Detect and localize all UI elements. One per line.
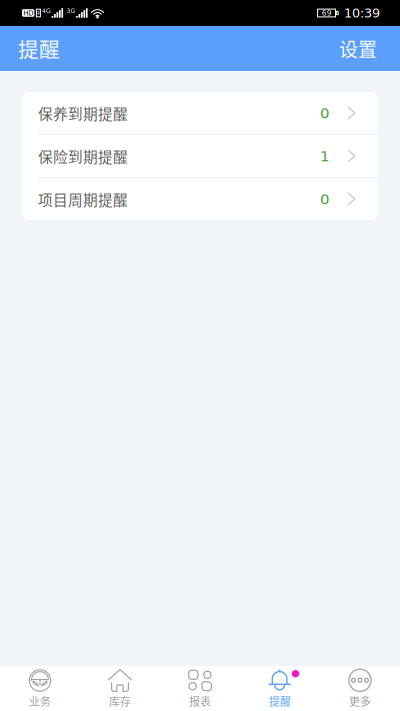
staticText: 1 (320, 147, 330, 165)
button[interactable]: 更多 (320, 666, 400, 711)
staticText: 4G (42, 7, 51, 14)
staticText: 10:39 (344, 6, 380, 20)
button[interactable]: 设置 (319, 25, 377, 72)
button[interactable]: 库存 (80, 666, 160, 711)
staticText: 提醒 (18, 33, 60, 63)
button[interactable]: 报表 (160, 666, 240, 711)
staticText: 库存 (109, 693, 131, 709)
staticText: 项目周期提醒 (38, 188, 128, 210)
staticText: 设置 (339, 35, 377, 62)
staticText: 0 (320, 104, 330, 122)
button[interactable]: 保养到期提醒 (22, 92, 378, 134)
staticText: 保养到期提醒 (38, 102, 128, 124)
staticText: 业务 (29, 693, 51, 709)
button[interactable]: 项目周期提醒 (22, 178, 378, 220)
staticText: 报表 (189, 693, 211, 709)
staticText: 更多 (349, 693, 371, 709)
staticText: 保险到期提醒 (38, 145, 128, 167)
staticText: 3G (66, 7, 75, 14)
staticText: 0 (320, 190, 330, 208)
button[interactable]: 业务 (0, 666, 80, 711)
staticText: HD (23, 9, 33, 17)
staticText: 提醒 (269, 693, 291, 709)
button[interactable]: 保险到期提醒 (22, 135, 378, 177)
button[interactable]: 提醒 (240, 666, 320, 711)
staticText: 69 (322, 9, 332, 17)
